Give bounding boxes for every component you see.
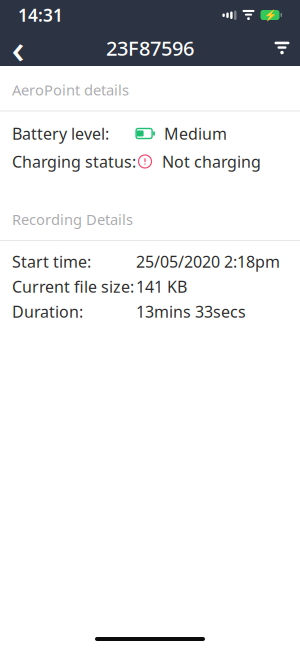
button[interactable]: Back	[3, 31, 33, 65]
staticText: 14:31	[18, 3, 63, 26]
staticText: Charging status:	[12, 151, 136, 172]
staticText: 13mins 33secs	[136, 301, 246, 322]
staticText: Current file size:	[12, 276, 134, 297]
staticText: Start time:	[12, 251, 91, 272]
staticText: 23F87596	[106, 35, 194, 61]
staticText: AeroPoint details	[12, 80, 129, 99]
staticText: Battery level:	[12, 123, 109, 144]
staticText: 25/05/2020 2:18pm	[136, 251, 280, 272]
staticText: ‹	[11, 21, 24, 74]
staticText: 141 KB	[136, 276, 187, 297]
staticText: Not charging	[162, 151, 261, 172]
staticText: Medium	[164, 123, 227, 144]
staticText: Duration:	[12, 301, 83, 322]
staticText: ⚡	[263, 9, 276, 21]
button[interactable]: Wi-Fi status	[267, 31, 297, 65]
staticText: Recording Details	[12, 209, 133, 229]
